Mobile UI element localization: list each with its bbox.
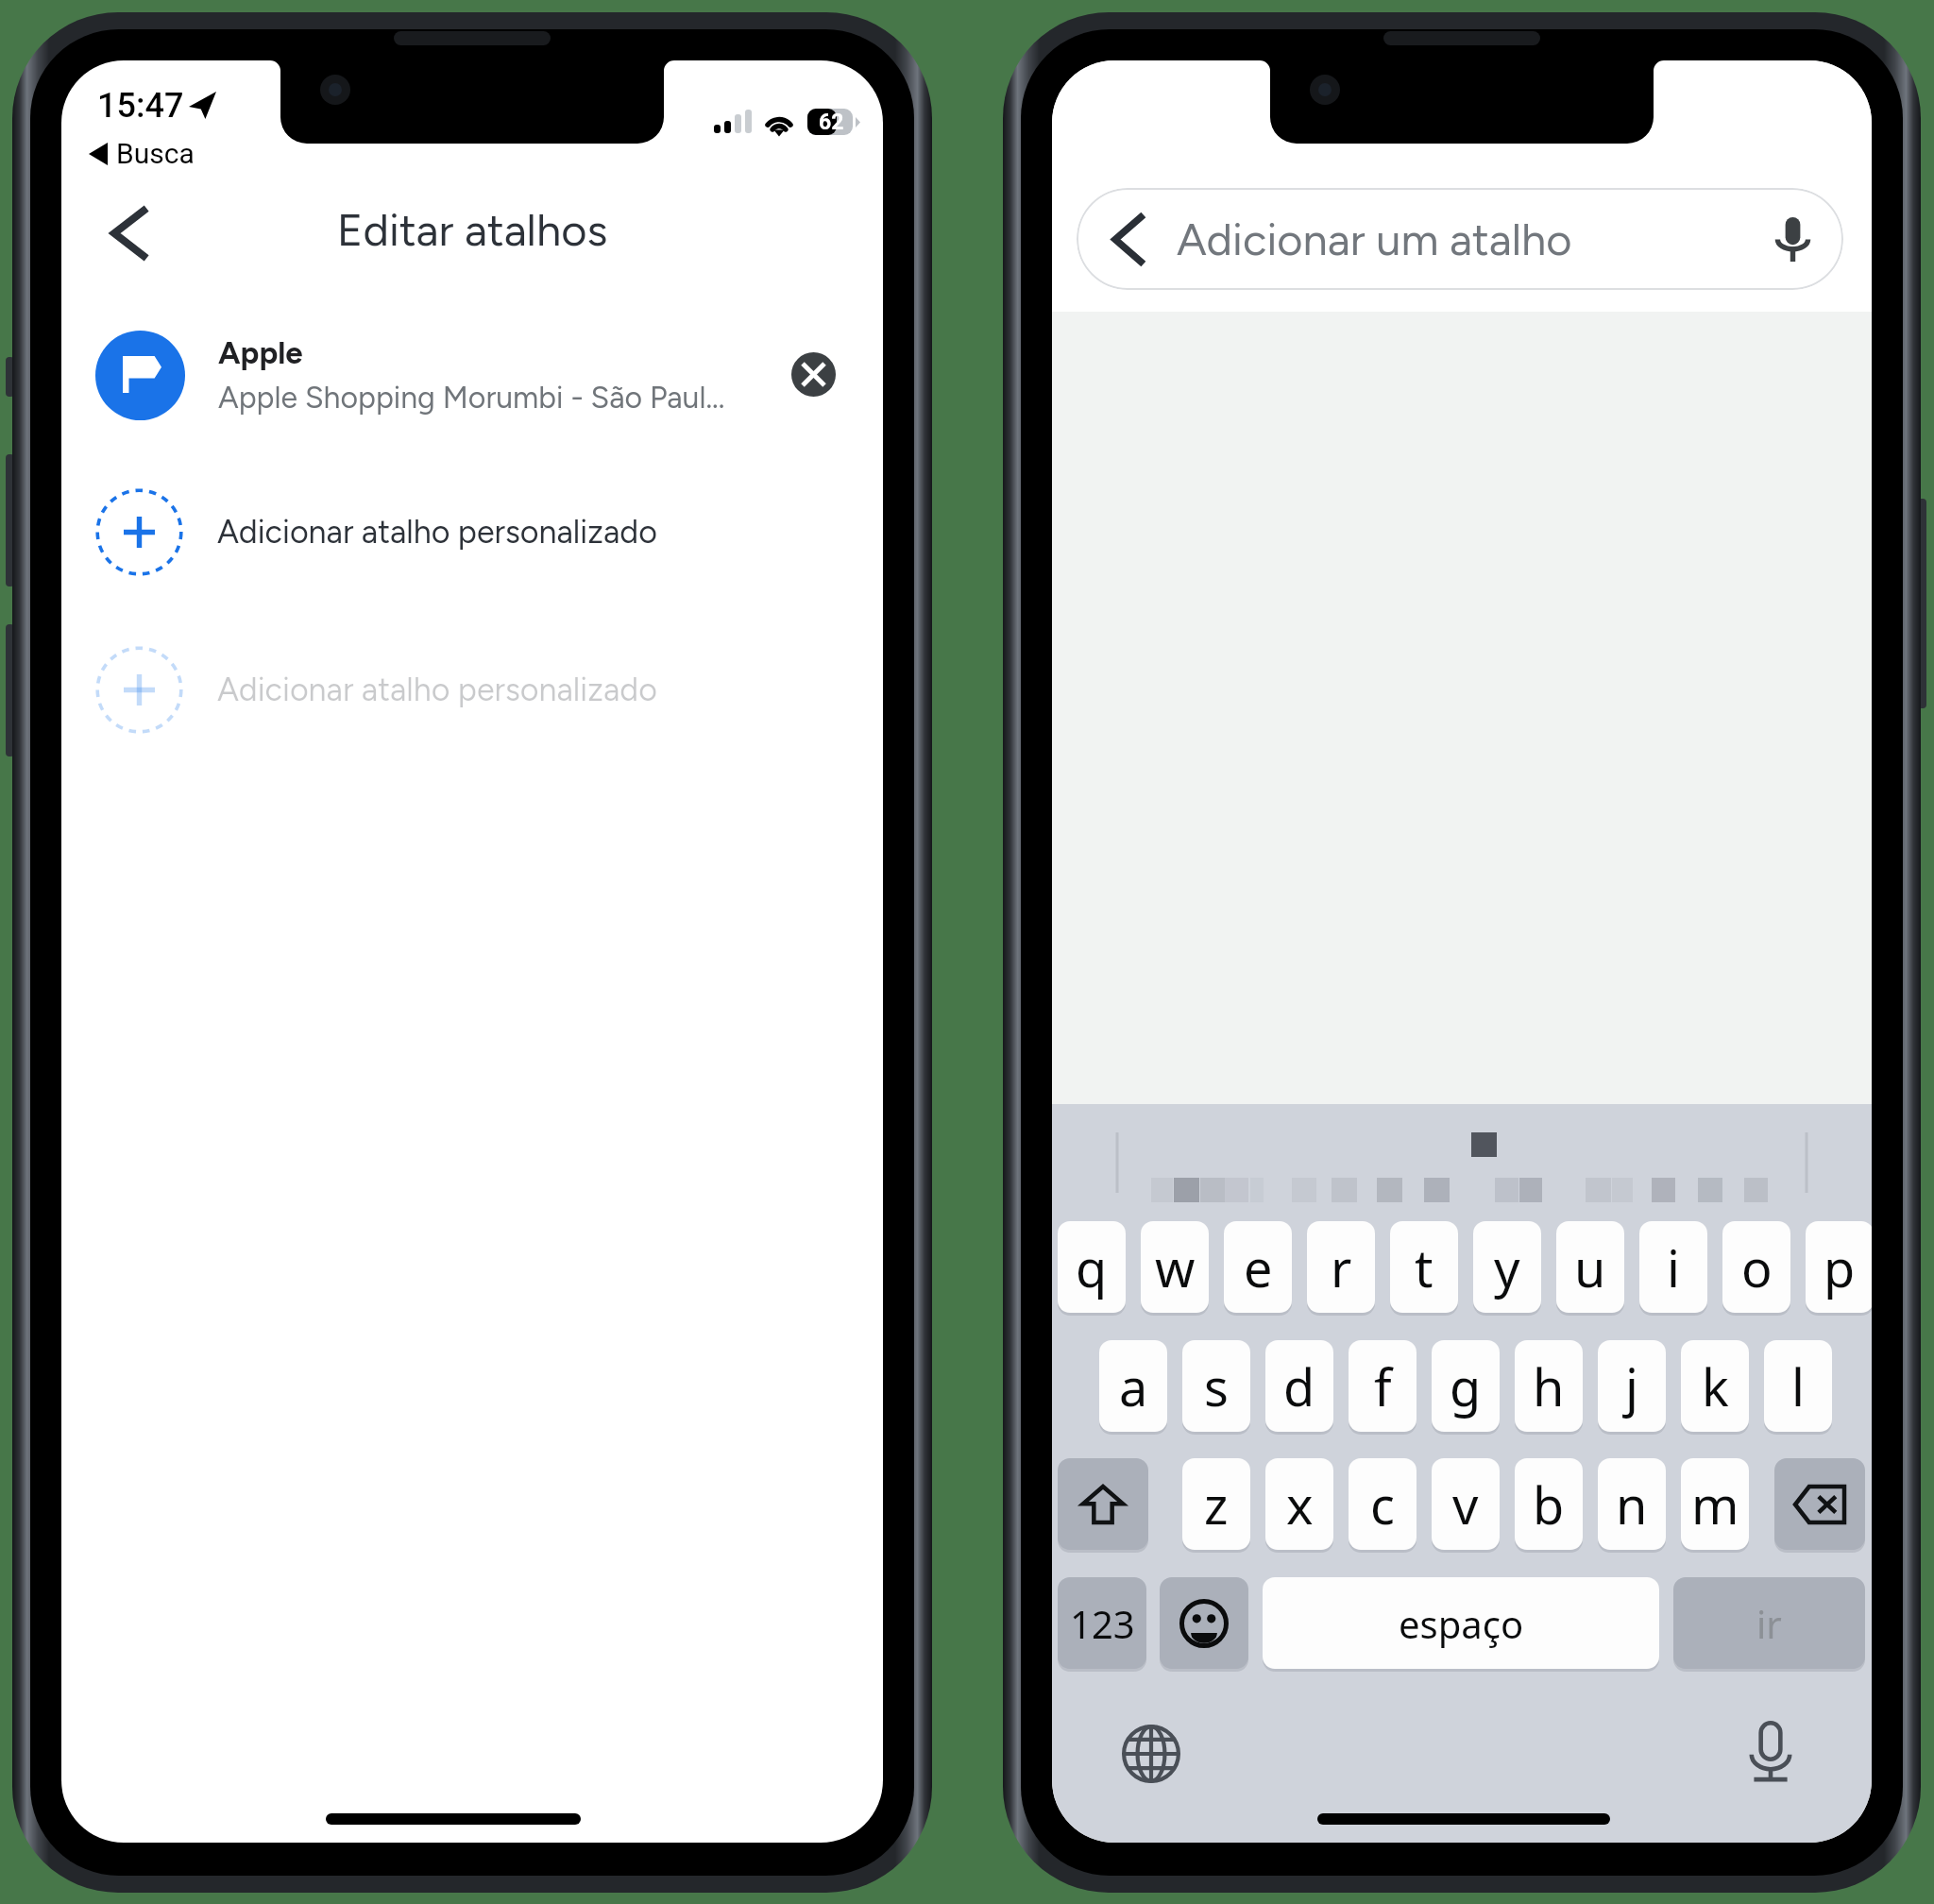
button[interactable]: i	[1639, 1221, 1707, 1313]
button[interactable]: x	[1265, 1458, 1333, 1550]
staticText: c	[1370, 1470, 1395, 1539]
button[interactable]: Adicionar atalho personalizado	[61, 633, 883, 746]
staticText: r	[1331, 1232, 1352, 1302]
staticText: t	[1415, 1232, 1434, 1302]
button[interactable]: Change keyboard language	[1118, 1721, 1184, 1787]
button[interactable]: o	[1722, 1221, 1790, 1313]
button[interactable]: t	[1390, 1221, 1458, 1313]
staticText: 62	[819, 110, 844, 135]
staticText: Apple Shopping Morumbi - São Paul...	[218, 380, 725, 416]
button[interactable]: Voice input	[1738, 1718, 1804, 1784]
button[interactable]: Shift	[1058, 1458, 1148, 1550]
staticText: i	[1667, 1232, 1680, 1302]
staticText: f	[1374, 1351, 1392, 1421]
button[interactable]: c	[1349, 1458, 1417, 1550]
button[interactable]: v	[1432, 1458, 1500, 1550]
staticText: Apple	[218, 334, 303, 372]
button[interactable]: l	[1764, 1340, 1832, 1432]
staticText: g	[1450, 1351, 1482, 1421]
staticText: p	[1824, 1232, 1856, 1302]
staticText: h	[1533, 1351, 1565, 1421]
staticText: Adicionar um atalho	[1177, 212, 1572, 265]
button[interactable]: r	[1307, 1221, 1375, 1313]
button[interactable]: k	[1681, 1340, 1749, 1432]
button[interactable]: j	[1598, 1340, 1666, 1432]
button[interactable]: y	[1473, 1221, 1541, 1313]
staticText: Adicionar atalho personalizado	[217, 671, 657, 709]
staticText: l	[1791, 1351, 1805, 1421]
button[interactable]: d	[1265, 1340, 1333, 1432]
button[interactable]: Apple	[61, 309, 883, 441]
button[interactable]: Space	[1263, 1577, 1659, 1669]
button[interactable]: Remove shortcut	[791, 352, 836, 397]
staticText: Editar atalhos	[61, 203, 883, 256]
button[interactable]: p	[1806, 1221, 1872, 1313]
staticText: y	[1494, 1232, 1520, 1302]
staticText: Adicionar atalho personalizado	[217, 513, 657, 552]
button[interactable]: b	[1515, 1458, 1583, 1550]
staticText: x	[1286, 1470, 1314, 1539]
button[interactable]: Emoji	[1160, 1577, 1248, 1669]
button[interactable]: w	[1141, 1221, 1209, 1313]
button[interactable]: s	[1182, 1340, 1250, 1432]
button[interactable]: e	[1224, 1221, 1292, 1313]
button[interactable]: Backspace	[1774, 1458, 1865, 1550]
staticText: 15:47	[97, 86, 184, 126]
staticText: a	[1119, 1351, 1148, 1421]
staticText: q	[1076, 1232, 1108, 1302]
staticText: v	[1452, 1470, 1479, 1539]
button[interactable]: ir	[1673, 1577, 1865, 1669]
button[interactable]: n	[1598, 1458, 1666, 1550]
staticText: w	[1155, 1232, 1196, 1302]
staticText: espaço	[1399, 1598, 1524, 1649]
button[interactable]: z	[1182, 1458, 1250, 1550]
staticText: e	[1244, 1232, 1273, 1302]
staticText: ir	[1756, 1598, 1782, 1649]
button[interactable]: Adicionar um atalho	[1077, 188, 1843, 290]
staticText: 123	[1070, 1598, 1135, 1649]
button[interactable]: 123	[1058, 1577, 1146, 1669]
button[interactable]: f	[1349, 1340, 1417, 1432]
button[interactable]: q	[1058, 1221, 1126, 1313]
staticText: d	[1283, 1351, 1315, 1421]
staticText: n	[1616, 1470, 1648, 1539]
staticText: o	[1741, 1232, 1773, 1302]
button[interactable]: h	[1515, 1340, 1583, 1432]
button[interactable]: Back	[91, 195, 166, 271]
staticText: u	[1574, 1232, 1606, 1302]
staticText: b	[1533, 1470, 1565, 1539]
staticText: k	[1702, 1351, 1729, 1421]
staticText: m	[1691, 1470, 1739, 1539]
button[interactable]: m	[1681, 1458, 1749, 1550]
staticText: s	[1204, 1351, 1229, 1421]
button[interactable]: Adicionar atalho personalizado	[61, 475, 883, 588]
staticText: j	[1625, 1351, 1638, 1421]
staticText: Busca	[116, 137, 195, 170]
button[interactable]: u	[1556, 1221, 1624, 1313]
button[interactable]: a	[1099, 1340, 1167, 1432]
button[interactable]: g	[1432, 1340, 1500, 1432]
staticText: z	[1204, 1470, 1229, 1539]
